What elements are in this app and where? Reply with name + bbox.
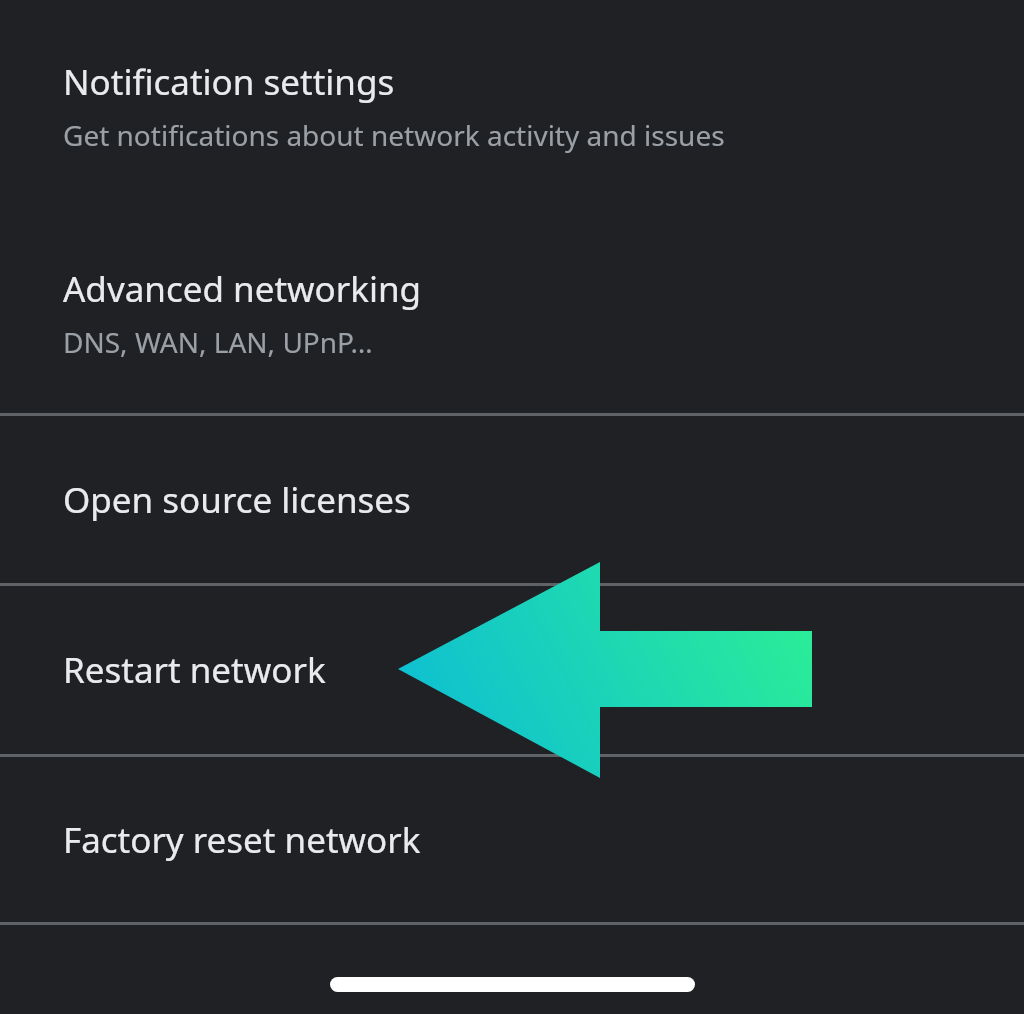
- other: Home gesture indicator: [330, 977, 695, 992]
- staticText: DNS, WAN, LAN, UPnP…: [63, 323, 373, 361]
- staticText: Notification settings: [63, 58, 395, 106]
- button[interactable]: Open source licenses: [0, 416, 1024, 583]
- staticText: Factory reset network: [63, 816, 421, 864]
- button[interactable]: Notification settings: [0, 18, 1024, 196]
- staticText: Open source licenses: [63, 476, 411, 524]
- staticText: Advanced networking: [63, 265, 422, 313]
- staticText: Restart network: [63, 646, 326, 694]
- button[interactable]: Factory reset network: [0, 757, 1024, 922]
- button[interactable]: Advanced networking: [0, 222, 1024, 414]
- staticText: Get notifications about network activity…: [63, 116, 725, 154]
- button[interactable]: Restart network: [0, 586, 1024, 754]
- other: Annotation arrow pointing at Restart net…: [0, 0, 1024, 1014]
